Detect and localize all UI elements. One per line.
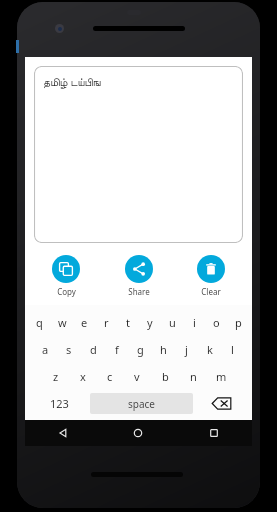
staticText: e [81, 315, 88, 330]
button[interactable]: Backspace [193, 390, 249, 417]
staticText: s [66, 342, 72, 357]
staticText: z [53, 369, 59, 384]
staticText: g [137, 342, 144, 357]
staticText: f [115, 342, 119, 357]
staticText: j [185, 342, 188, 357]
staticText: a [42, 342, 49, 357]
button[interactable]: l [221, 336, 244, 363]
button[interactable]: n [179, 363, 207, 390]
staticText: p [235, 315, 242, 330]
staticText: b [162, 369, 169, 384]
staticText: n [190, 369, 197, 384]
staticText: w [58, 315, 67, 330]
button[interactable]: x [69, 363, 96, 390]
staticText: r [104, 315, 109, 330]
button[interactable]: w [51, 308, 73, 336]
button[interactable]: Clear [184, 255, 238, 297]
button[interactable]: r [95, 308, 117, 336]
button[interactable]: y [139, 308, 161, 336]
staticText: l [231, 342, 234, 357]
button[interactable]: g [129, 336, 152, 363]
staticText: t [126, 315, 130, 330]
button[interactable]: Back [25, 420, 100, 446]
button[interactable]: space [90, 393, 193, 414]
button[interactable]: u [161, 308, 183, 336]
staticText: v [134, 369, 140, 384]
button[interactable]: Share [112, 255, 166, 297]
button[interactable]: q [28, 308, 51, 336]
button[interactable]: o [205, 308, 227, 336]
button[interactable]: a [33, 336, 57, 363]
button[interactable]: f [105, 336, 129, 363]
button[interactable]: e [73, 308, 95, 336]
button[interactable]: 123 [28, 390, 90, 417]
button[interactable]: v [123, 363, 151, 390]
staticText: q [36, 315, 43, 330]
staticText: 123 [50, 396, 69, 411]
button[interactable]: z [42, 363, 69, 390]
button[interactable]: தமிழ் டய்பிங [34, 66, 243, 243]
staticText: d [90, 342, 97, 357]
staticText: h [160, 342, 167, 357]
button[interactable]: k [198, 336, 221, 363]
button[interactable]: j [175, 336, 198, 363]
button[interactable]: d [81, 336, 105, 363]
button[interactable]: b [151, 363, 179, 390]
staticText: Copy [57, 286, 76, 297]
staticText: Clear [201, 286, 221, 297]
button[interactable]: Home [100, 420, 176, 446]
button[interactable]: Copy [39, 255, 93, 297]
staticText: u [169, 315, 176, 330]
button[interactable]: h [152, 336, 175, 363]
staticText: x [80, 369, 86, 384]
button[interactable]: i [183, 308, 205, 336]
staticText: தமிழ் டய்பிங [43, 74, 101, 89]
button[interactable]: s [57, 336, 81, 363]
button[interactable]: c [96, 363, 123, 390]
staticText: o [213, 315, 220, 330]
button[interactable]: m [207, 363, 235, 390]
staticText: space [128, 397, 155, 411]
staticText: Share [128, 286, 150, 297]
staticText: m [216, 369, 227, 384]
staticText: k [207, 342, 213, 357]
button[interactable]: t [117, 308, 139, 336]
staticText: y [147, 315, 153, 330]
button[interactable]: p [227, 308, 249, 336]
button[interactable]: Recents [176, 420, 252, 446]
staticText: c [107, 369, 113, 384]
staticText: i [193, 315, 196, 330]
